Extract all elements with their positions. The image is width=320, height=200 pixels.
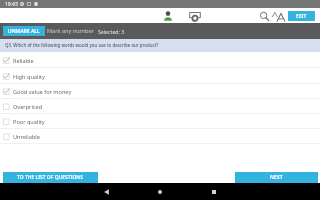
button[interactable]: Respondent	[160, 9, 176, 23]
button[interactable]: Recent apps	[206, 184, 222, 200]
staticText: Good value for money	[13, 88, 72, 96]
staticText: Mark any number	[47, 27, 94, 35]
staticText: UNMARK ALL	[8, 28, 40, 35]
button[interactable]: Home	[152, 184, 168, 200]
button[interactable]: NEXT	[235, 172, 318, 183]
staticText: NEXT	[270, 174, 283, 181]
staticText: Selected: 3	[98, 28, 125, 35]
staticText: Unreliable	[13, 133, 40, 141]
button[interactable]: Cast screen	[187, 9, 203, 23]
button[interactable]: EXIT	[288, 11, 315, 21]
staticText: High quality	[13, 73, 45, 81]
button[interactable]: Text size	[271, 9, 286, 23]
button[interactable]: TO THE LIST OF QUESTIONS	[3, 172, 98, 183]
staticText: Q3. Which of the following words would y…	[5, 42, 159, 48]
staticText: Overpriced	[13, 103, 43, 111]
button[interactable]: Reliable	[0, 53, 320, 68]
button[interactable]: Unreliable	[0, 129, 320, 144]
staticText: TO THE LIST OF QUESTIONS	[17, 174, 84, 181]
button[interactable]: Poor quality	[0, 114, 320, 129]
staticText: Poor quality	[13, 118, 45, 126]
staticText: 19:43	[5, 1, 18, 8]
button[interactable]: Back	[98, 183, 115, 200]
button[interactable]: High quality	[0, 69, 320, 84]
button[interactable]: Good value for money	[0, 84, 320, 99]
button[interactable]: Search	[256, 9, 272, 23]
staticText: Reliable	[13, 57, 34, 65]
staticText: EXIT	[296, 13, 307, 20]
button[interactable]: Overpriced	[0, 99, 320, 114]
button[interactable]: UNMARK ALL	[3, 26, 45, 36]
